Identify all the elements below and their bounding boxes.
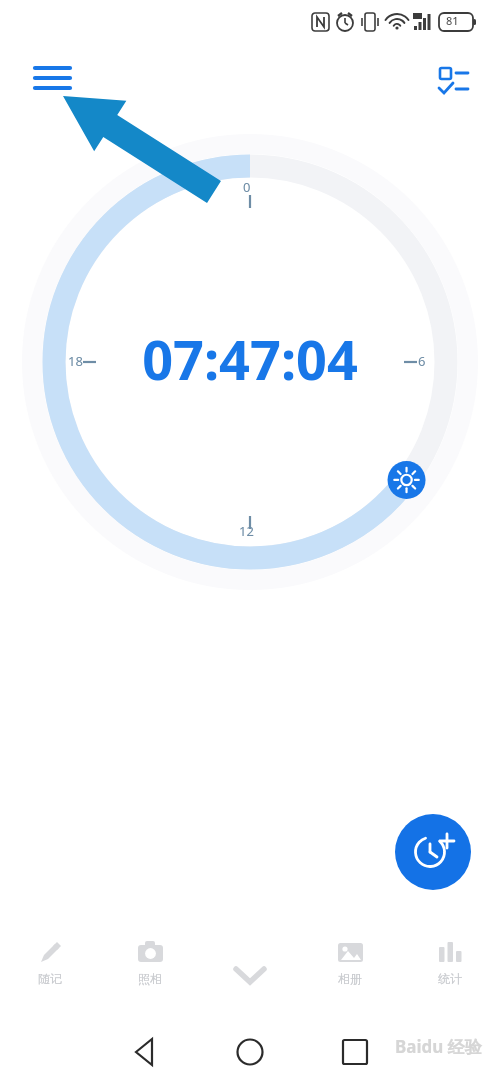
staticText: 随记 xyxy=(38,971,62,986)
button[interactable]: Collapse xyxy=(200,928,300,1000)
staticText: 18 xyxy=(68,352,83,370)
staticText: 相册 xyxy=(338,971,362,986)
staticText: 统计 xyxy=(438,971,462,986)
staticText: 07:47:04 xyxy=(142,322,358,396)
button[interactable]: 随记 xyxy=(0,928,100,1000)
staticText: 81 xyxy=(446,13,459,28)
button[interactable]: 统计 xyxy=(400,928,500,1000)
staticText: 12 xyxy=(239,522,254,540)
staticText: 照相 xyxy=(138,971,162,986)
button[interactable]: 照相 xyxy=(100,928,200,1000)
button[interactable]: Menu xyxy=(26,58,78,110)
staticText: Baidu 经验 xyxy=(395,1035,482,1058)
button[interactable]: Add timer xyxy=(395,814,471,890)
staticText: 6 xyxy=(418,352,426,370)
staticText: 0 xyxy=(243,178,251,196)
button[interactable]: Tasks xyxy=(430,58,476,104)
button[interactable]: 相册 xyxy=(300,928,400,1000)
